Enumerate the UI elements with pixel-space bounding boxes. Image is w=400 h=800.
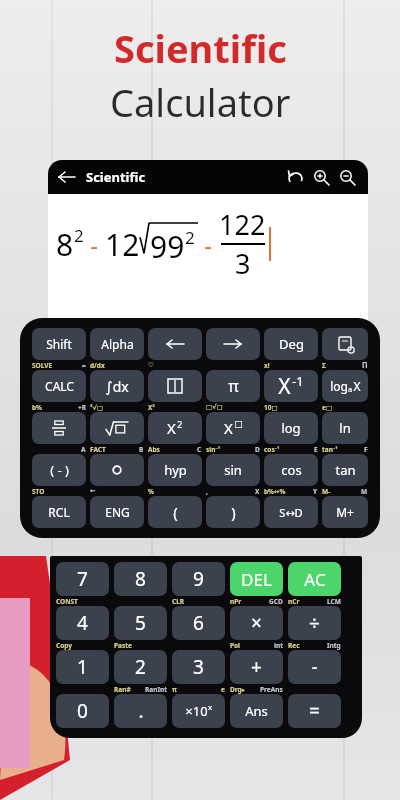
staticText: ,: [206, 487, 208, 496]
button[interactable]: (: [148, 496, 202, 528]
button[interactable]: DEL: [230, 562, 283, 596]
staticText: log: [281, 419, 301, 437]
staticText: d/dx: [90, 361, 105, 370]
button[interactable]: Zoom in: [308, 164, 334, 190]
staticText: sin⁻¹: [206, 445, 221, 454]
staticText: M: [361, 487, 368, 496]
staticText: .: [138, 698, 144, 724]
button[interactable]: ln: [322, 412, 368, 444]
button[interactable]: log: [322, 370, 368, 402]
button[interactable]: M+: [322, 496, 368, 528]
button[interactable]: book: [148, 370, 202, 402]
button[interactable]: ( - ): [32, 454, 86, 486]
button[interactable]: Alpha: [90, 328, 144, 360]
button[interactable]: .: [114, 694, 167, 728]
staticText: 6: [193, 610, 204, 636]
button[interactable]: X: [148, 412, 202, 444]
button[interactable]: frac: [32, 412, 86, 444]
staticText: AC: [304, 568, 326, 591]
button[interactable]: tan: [322, 454, 368, 486]
button[interactable]: 5: [114, 606, 167, 640]
button[interactable]: ): [206, 496, 260, 528]
button[interactable]: degree: [90, 454, 144, 486]
staticText: C: [197, 445, 202, 454]
button[interactable]: 7: [56, 562, 109, 596]
staticText: Drg▸: [230, 685, 245, 694]
button[interactable]: Deg: [264, 328, 318, 360]
button[interactable]: cos: [264, 454, 318, 486]
button[interactable]: X: [264, 370, 318, 402]
button[interactable]: X: [206, 412, 260, 444]
staticText: GCD: [269, 597, 283, 606]
button[interactable]: ∫dx: [90, 370, 144, 402]
staticText: tan: [335, 461, 356, 479]
button[interactable]: sin: [206, 454, 260, 486]
button[interactable]: hyp: [148, 454, 202, 486]
button[interactable]: 2: [114, 650, 167, 684]
button[interactable]: RCL: [32, 496, 86, 528]
staticText: x: [208, 702, 213, 713]
staticText: Paste: [114, 641, 132, 650]
staticText: hyp: [164, 461, 187, 479]
button[interactable]: Shift: [32, 328, 86, 360]
staticText: 1: [77, 654, 88, 680]
staticText: ∫dx: [105, 377, 129, 396]
button[interactable]: -: [288, 650, 341, 684]
staticText: -: [84, 228, 105, 261]
staticText: b%↔%: [264, 487, 286, 496]
staticText: ∏: [362, 361, 368, 369]
staticText: log: [330, 378, 348, 394]
staticText: 3: [193, 654, 204, 680]
button[interactable]: 9: [172, 562, 225, 596]
staticText: FACT: [90, 445, 106, 454]
staticText: 7: [77, 566, 88, 592]
button[interactable]: =: [288, 694, 341, 728]
button[interactable]: 0: [56, 694, 109, 728]
staticText: e□: [322, 403, 333, 412]
staticText: Σ: [322, 361, 326, 370]
button[interactable]: 8: [114, 562, 167, 596]
button[interactable]: ÷: [288, 606, 341, 640]
button[interactable]: ENG: [90, 496, 144, 528]
button[interactable]: log: [264, 412, 318, 444]
button[interactable]: ×: [230, 606, 283, 640]
staticText: e: [221, 685, 225, 694]
staticText: SOLVE: [32, 361, 53, 370]
button[interactable]: AC: [288, 562, 341, 596]
button[interactable]: S↔D: [264, 496, 318, 528]
staticText: 2: [74, 224, 84, 247]
staticText: nCr: [288, 597, 300, 606]
button[interactable]: Back: [56, 166, 78, 188]
button[interactable]: π: [206, 370, 260, 402]
button[interactable]: right: [206, 328, 260, 360]
button[interactable]: +: [230, 650, 283, 684]
staticText: -: [311, 654, 318, 680]
staticText: π: [172, 685, 177, 694]
button[interactable]: ×10: [172, 694, 225, 728]
staticText: Rec: [288, 641, 300, 650]
staticText: Alpha: [101, 336, 134, 352]
staticText: Y: [313, 487, 318, 496]
staticText: 0: [77, 698, 88, 724]
button[interactable]: doc: [322, 328, 368, 360]
button[interactable]: Undo: [282, 164, 308, 190]
button[interactable]: 3: [172, 650, 225, 684]
staticText: 2: [135, 654, 146, 680]
staticText: CALC: [45, 378, 74, 394]
button[interactable]: 6: [172, 606, 225, 640]
staticText: 8: [56, 224, 74, 265]
button[interactable]: left: [148, 328, 202, 360]
staticText: nPr: [230, 597, 242, 606]
button[interactable]: Ans: [230, 694, 283, 728]
staticText: ←: [90, 487, 96, 495]
button[interactable]: 1: [56, 650, 109, 684]
button[interactable]: sqrtbox: [90, 412, 144, 444]
staticText: D: [255, 445, 260, 454]
staticText: 99: [150, 226, 185, 267]
button[interactable]: 4: [56, 606, 109, 640]
button[interactable]: Zoom out: [334, 164, 360, 190]
staticText: X: [278, 372, 291, 401]
staticText: ln: [339, 419, 351, 437]
button[interactable]: CALC: [32, 370, 86, 402]
staticText: RCL: [48, 504, 70, 520]
